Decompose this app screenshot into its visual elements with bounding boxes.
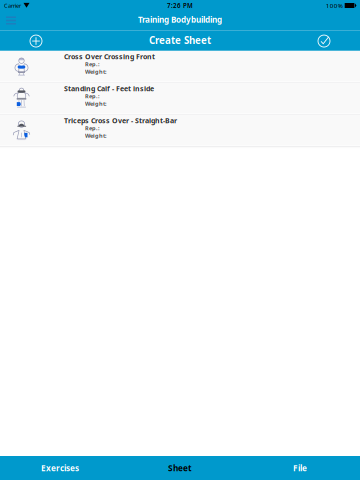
staticText: Weight:	[85, 132, 107, 139]
staticText: 100%	[326, 1, 343, 10]
button[interactable]: Sheet	[120, 456, 240, 480]
staticText: Standing Calf - Feet inside	[64, 84, 154, 93]
button[interactable]: Standing Calf - Feet inside	[0, 84, 360, 113]
staticText: Rep.:	[85, 60, 100, 68]
button[interactable]: Cross Over Crossing Front	[0, 52, 360, 81]
button[interactable]: Save sheet	[288, 31, 360, 51]
button[interactable]: Triceps Cross Over - Straight-Bar	[0, 116, 360, 145]
staticText: Create Sheet	[149, 34, 211, 47]
button[interactable]: Menu	[0, 11, 22, 30]
button[interactable]: File	[240, 456, 360, 480]
staticText: Rep.:	[85, 92, 100, 100]
button[interactable]: Exercises	[0, 456, 120, 480]
staticText: File	[293, 462, 307, 474]
button[interactable]: Add exercise	[0, 31, 72, 51]
staticText: Training Bodybuilding	[138, 14, 222, 25]
staticText: Weight:	[85, 68, 107, 75]
staticText: Exercises	[41, 462, 79, 474]
staticText: Sheet	[168, 462, 192, 474]
staticText: Carrier	[4, 2, 21, 9]
staticText: Rep.:	[85, 124, 100, 132]
staticText: Triceps Cross Over - Straight-Bar	[64, 116, 177, 125]
staticText: Weight:	[85, 100, 107, 107]
staticText: 7:26 PM	[167, 1, 193, 10]
staticText: Cross Over Crossing Front	[64, 52, 155, 61]
